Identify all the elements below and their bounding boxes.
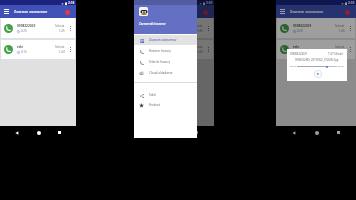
staticText: Zaznamnik hovorov bbox=[139, 22, 166, 26]
button[interactable]: 0908322369 bbox=[277, 18, 355, 38]
button[interactable]: Menu bbox=[136, 7, 145, 16]
staticText: Robene hovory bbox=[149, 49, 171, 53]
staticText: 2:18 bbox=[68, 1, 75, 5]
staticText: 0:20 bbox=[297, 29, 303, 33]
button[interactable]: Back bbox=[289, 128, 298, 137]
staticText: Sobota bbox=[193, 24, 203, 28]
button[interactable]: Cloud ukladanie bbox=[134, 68, 197, 78]
button[interactable]: Odosle hovory bbox=[134, 57, 197, 67]
staticText: Odosle hovory bbox=[149, 60, 171, 64]
button[interactable]: 0908322369 bbox=[135, 18, 213, 38]
button[interactable]: tele bbox=[277, 40, 355, 59]
staticText: 0908322369 bbox=[290, 52, 307, 56]
button[interactable]: Record bbox=[200, 7, 210, 17]
button[interactable]: Home bbox=[34, 128, 43, 137]
staticText: Sdiel bbox=[149, 93, 156, 97]
button[interactable]: Play bbox=[313, 69, 322, 78]
staticText: 1:44 bbox=[339, 50, 345, 54]
button[interactable]: More options bbox=[347, 46, 354, 53]
staticText: 2:18 bbox=[206, 1, 213, 5]
staticText: 0908322369 bbox=[17, 24, 36, 28]
button[interactable] bbox=[134, 35, 197, 45]
button[interactable]: Home bbox=[312, 128, 321, 137]
staticText: 0908322369 bbox=[151, 24, 170, 28]
staticText: 2:18 bbox=[348, 1, 355, 5]
button[interactable]: 0908322369 bbox=[1, 18, 75, 38]
button[interactable]: Recents bbox=[334, 128, 343, 137]
button[interactable]: Zoznam zaznamov bbox=[134, 35, 197, 45]
button[interactable]: Recents bbox=[55, 128, 64, 137]
button[interactable]: Record bbox=[342, 7, 352, 17]
staticText: tele bbox=[17, 45, 24, 49]
staticText: 0:16 bbox=[21, 50, 27, 54]
staticText: Hodnot bbox=[149, 103, 160, 107]
staticText: 0:16 bbox=[155, 50, 161, 54]
button[interactable]: Menu bbox=[278, 7, 287, 16]
staticText: Sobota bbox=[335, 45, 345, 49]
staticText: tele bbox=[293, 45, 300, 49]
button[interactable]: More options bbox=[205, 46, 212, 53]
staticText: Sobota bbox=[55, 24, 65, 28]
button[interactable]: More options bbox=[67, 25, 74, 32]
staticText: 1:44 bbox=[59, 50, 65, 54]
staticText: 0:16 bbox=[297, 50, 303, 54]
staticText: Sobota bbox=[55, 45, 65, 49]
staticText: Zoznam zaznamov bbox=[290, 9, 324, 14]
button[interactable]: Recents bbox=[192, 128, 201, 137]
staticText: 0908322369 bbox=[293, 24, 312, 28]
staticText: 00:20 bbox=[338, 65, 344, 68]
button[interactable]: Sdiel bbox=[134, 90, 197, 100]
button[interactable]: Record bbox=[62, 7, 72, 17]
staticText: 1:45 bbox=[197, 29, 203, 33]
button[interactable]: Robene hovory bbox=[134, 46, 197, 56]
staticText: 0:20 bbox=[21, 29, 27, 33]
button[interactable]: tele bbox=[135, 40, 213, 59]
button[interactable]: More options bbox=[347, 25, 354, 32]
staticText: Sobota bbox=[193, 45, 203, 49]
staticText: 1:45 bbox=[59, 29, 65, 33]
button[interactable]: Back bbox=[12, 128, 21, 137]
button[interactable]: More options bbox=[67, 46, 74, 53]
button[interactable]: More options bbox=[205, 25, 212, 32]
staticText: Zoznam zaznamov bbox=[149, 38, 177, 42]
button[interactable]: Hodnot bbox=[134, 100, 197, 110]
staticText: Cloud ukladanie bbox=[149, 71, 173, 75]
staticText: 00:02 bbox=[290, 65, 296, 68]
button[interactable]: tele bbox=[1, 40, 75, 59]
staticText: 1:44 bbox=[197, 50, 203, 54]
button[interactable]: Menu bbox=[2, 7, 11, 16]
staticText: Sobota bbox=[335, 24, 345, 28]
staticText: 1:45 bbox=[339, 29, 345, 33]
staticText: 0908322369_20190322_014506.3gp bbox=[295, 58, 339, 62]
staticText: Zoznam zaznamov bbox=[14, 9, 48, 14]
staticText: 1:57 (4min) bbox=[328, 52, 344, 56]
